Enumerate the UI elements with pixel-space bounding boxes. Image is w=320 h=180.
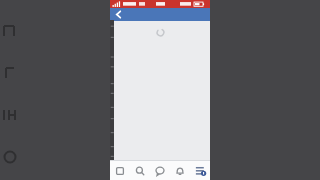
button[interactable]: Messages: [150, 161, 170, 180]
button[interactable]: Back: [111, 8, 125, 21]
button[interactable]: Menu: [190, 161, 210, 180]
button[interactable]: Notifications: [170, 161, 190, 180]
button[interactable]: Home: [110, 161, 130, 180]
button[interactable]: Search: [130, 161, 150, 180]
